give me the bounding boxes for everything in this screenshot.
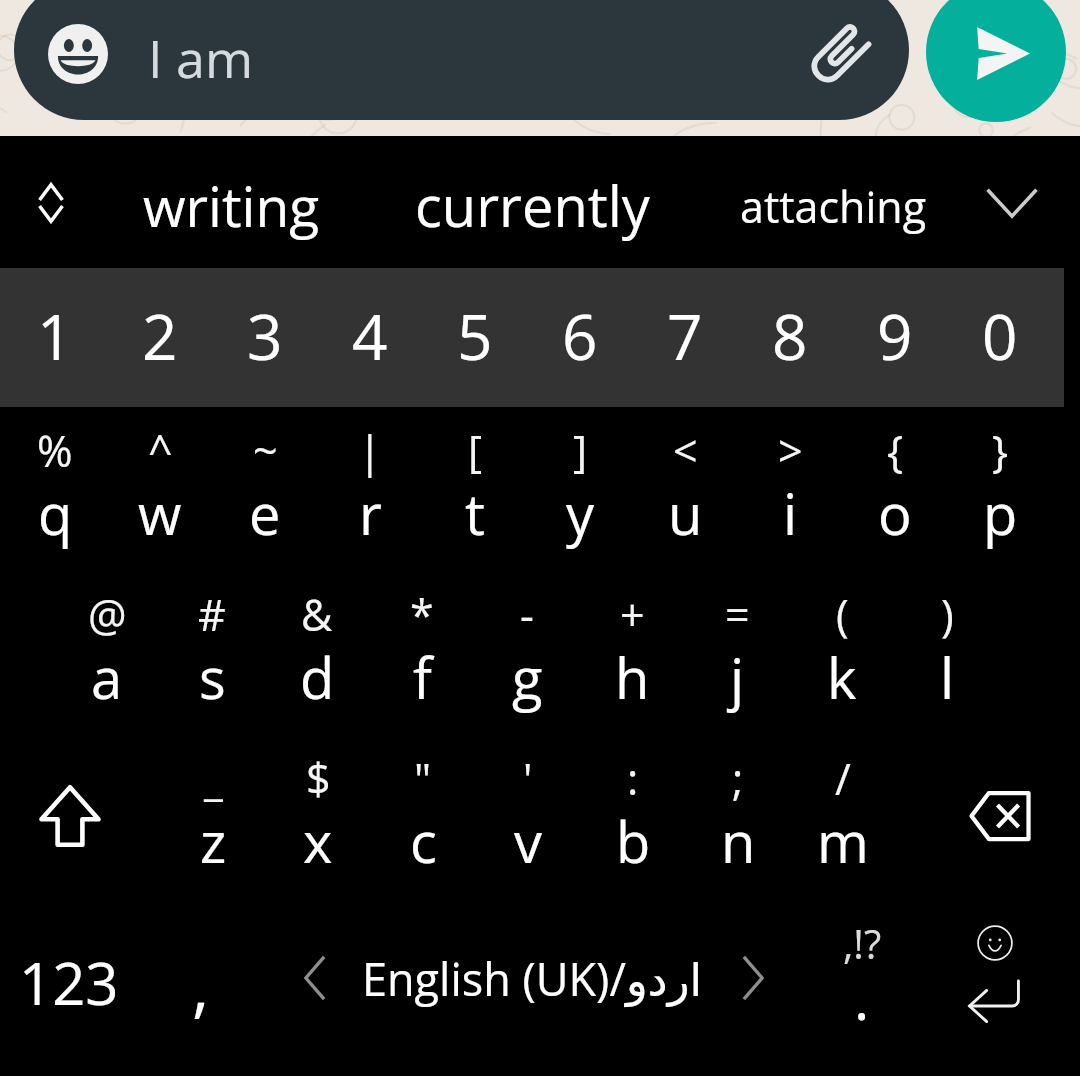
button[interactable] [715,137,950,268]
button[interactable]: Expand suggestions [11,153,91,253]
staticText: [ [468,421,483,480]
button[interactable] [318,407,423,571]
staticText: $ [306,749,331,808]
button[interactable] [108,268,213,407]
button[interactable]: More suggestions [962,158,1062,248]
button[interactable] [160,571,265,735]
staticText: z [200,803,227,879]
button[interactable] [843,407,948,571]
staticText: c [410,803,437,879]
button[interactable] [685,571,790,735]
staticText: h [615,639,650,715]
staticText: , [192,939,210,1029]
button[interactable] [55,571,160,735]
button[interactable] [895,571,1000,735]
button[interactable] [3,407,108,571]
button[interactable] [266,735,371,899]
staticText: English (UK)/اردو [362,948,702,1009]
button[interactable] [371,735,476,899]
staticText: ) [941,585,954,644]
staticText: writing [143,168,320,243]
button[interactable] [423,268,528,407]
button[interactable] [318,268,423,407]
button[interactable]: Backspace [915,735,1080,899]
staticText: 4 [352,294,388,378]
button[interactable] [528,268,633,407]
button[interactable] [370,571,475,735]
staticText: > [778,421,803,480]
staticText: 1 [37,294,73,378]
staticText: 7 [667,294,703,378]
staticText: . [854,958,870,1037]
staticText: q [38,475,73,551]
button[interactable] [580,571,685,735]
button[interactable] [213,407,318,571]
staticText: 3 [247,294,283,378]
button[interactable] [161,735,266,899]
button[interactable]: Send [926,0,1066,122]
staticText: | [358,421,382,480]
staticText: y [566,475,595,551]
button[interactable]: Emoji [48,24,108,84]
staticText: ^ [148,421,173,480]
staticText: " [414,749,432,808]
staticText: - [520,585,534,644]
staticText: 8 [772,294,808,378]
staticText: ,!? [843,916,882,970]
staticText: I am [148,22,254,93]
staticText: { [887,421,904,480]
button[interactable] [476,735,581,899]
staticText: = [725,585,750,644]
button[interactable] [738,407,843,571]
button[interactable] [948,407,1053,571]
staticText: & [301,585,333,644]
staticText: ( [836,585,849,644]
button[interactable] [948,268,1053,407]
staticText: ; [732,749,744,808]
button[interactable] [280,899,780,1076]
staticText: g [512,639,543,715]
staticText: attaching [740,177,926,236]
staticText: 5 [457,294,493,378]
staticText: 2 [142,294,178,378]
staticText: ] [573,421,588,480]
button[interactable] [265,571,370,735]
button[interactable]: Attach [810,22,872,84]
button[interactable] [108,407,213,571]
button[interactable] [633,268,738,407]
button[interactable] [843,268,948,407]
staticText: v [514,803,542,879]
staticText: x [303,803,333,879]
staticText: / [835,749,851,808]
staticText: m [817,803,869,879]
button[interactable] [400,137,665,268]
button[interactable] [112,137,350,268]
staticText: o [878,475,912,551]
button[interactable] [791,735,896,899]
staticText: t [465,475,485,551]
staticText: ~ [253,421,278,480]
staticText: 123 [19,943,119,1022]
button[interactable] [528,407,633,571]
button[interactable]: Enter [930,899,1080,1076]
button[interactable] [581,735,686,899]
button[interactable] [3,268,108,407]
button[interactable] [810,899,915,1076]
staticText: u [668,475,703,551]
button[interactable] [150,899,260,1076]
button[interactable] [213,268,318,407]
button[interactable] [633,407,738,571]
button[interactable] [738,268,843,407]
button[interactable]: Shift [0,735,160,899]
button[interactable] [0,899,140,1076]
button[interactable] [686,735,791,899]
button[interactable] [790,571,895,735]
staticText: p [983,475,1018,551]
staticText: 9 [877,294,913,378]
button[interactable] [475,571,580,735]
staticText: * [410,585,434,644]
staticText: w [138,475,182,551]
button[interactable] [14,0,909,120]
button[interactable] [423,407,528,571]
staticText: j [730,639,745,715]
